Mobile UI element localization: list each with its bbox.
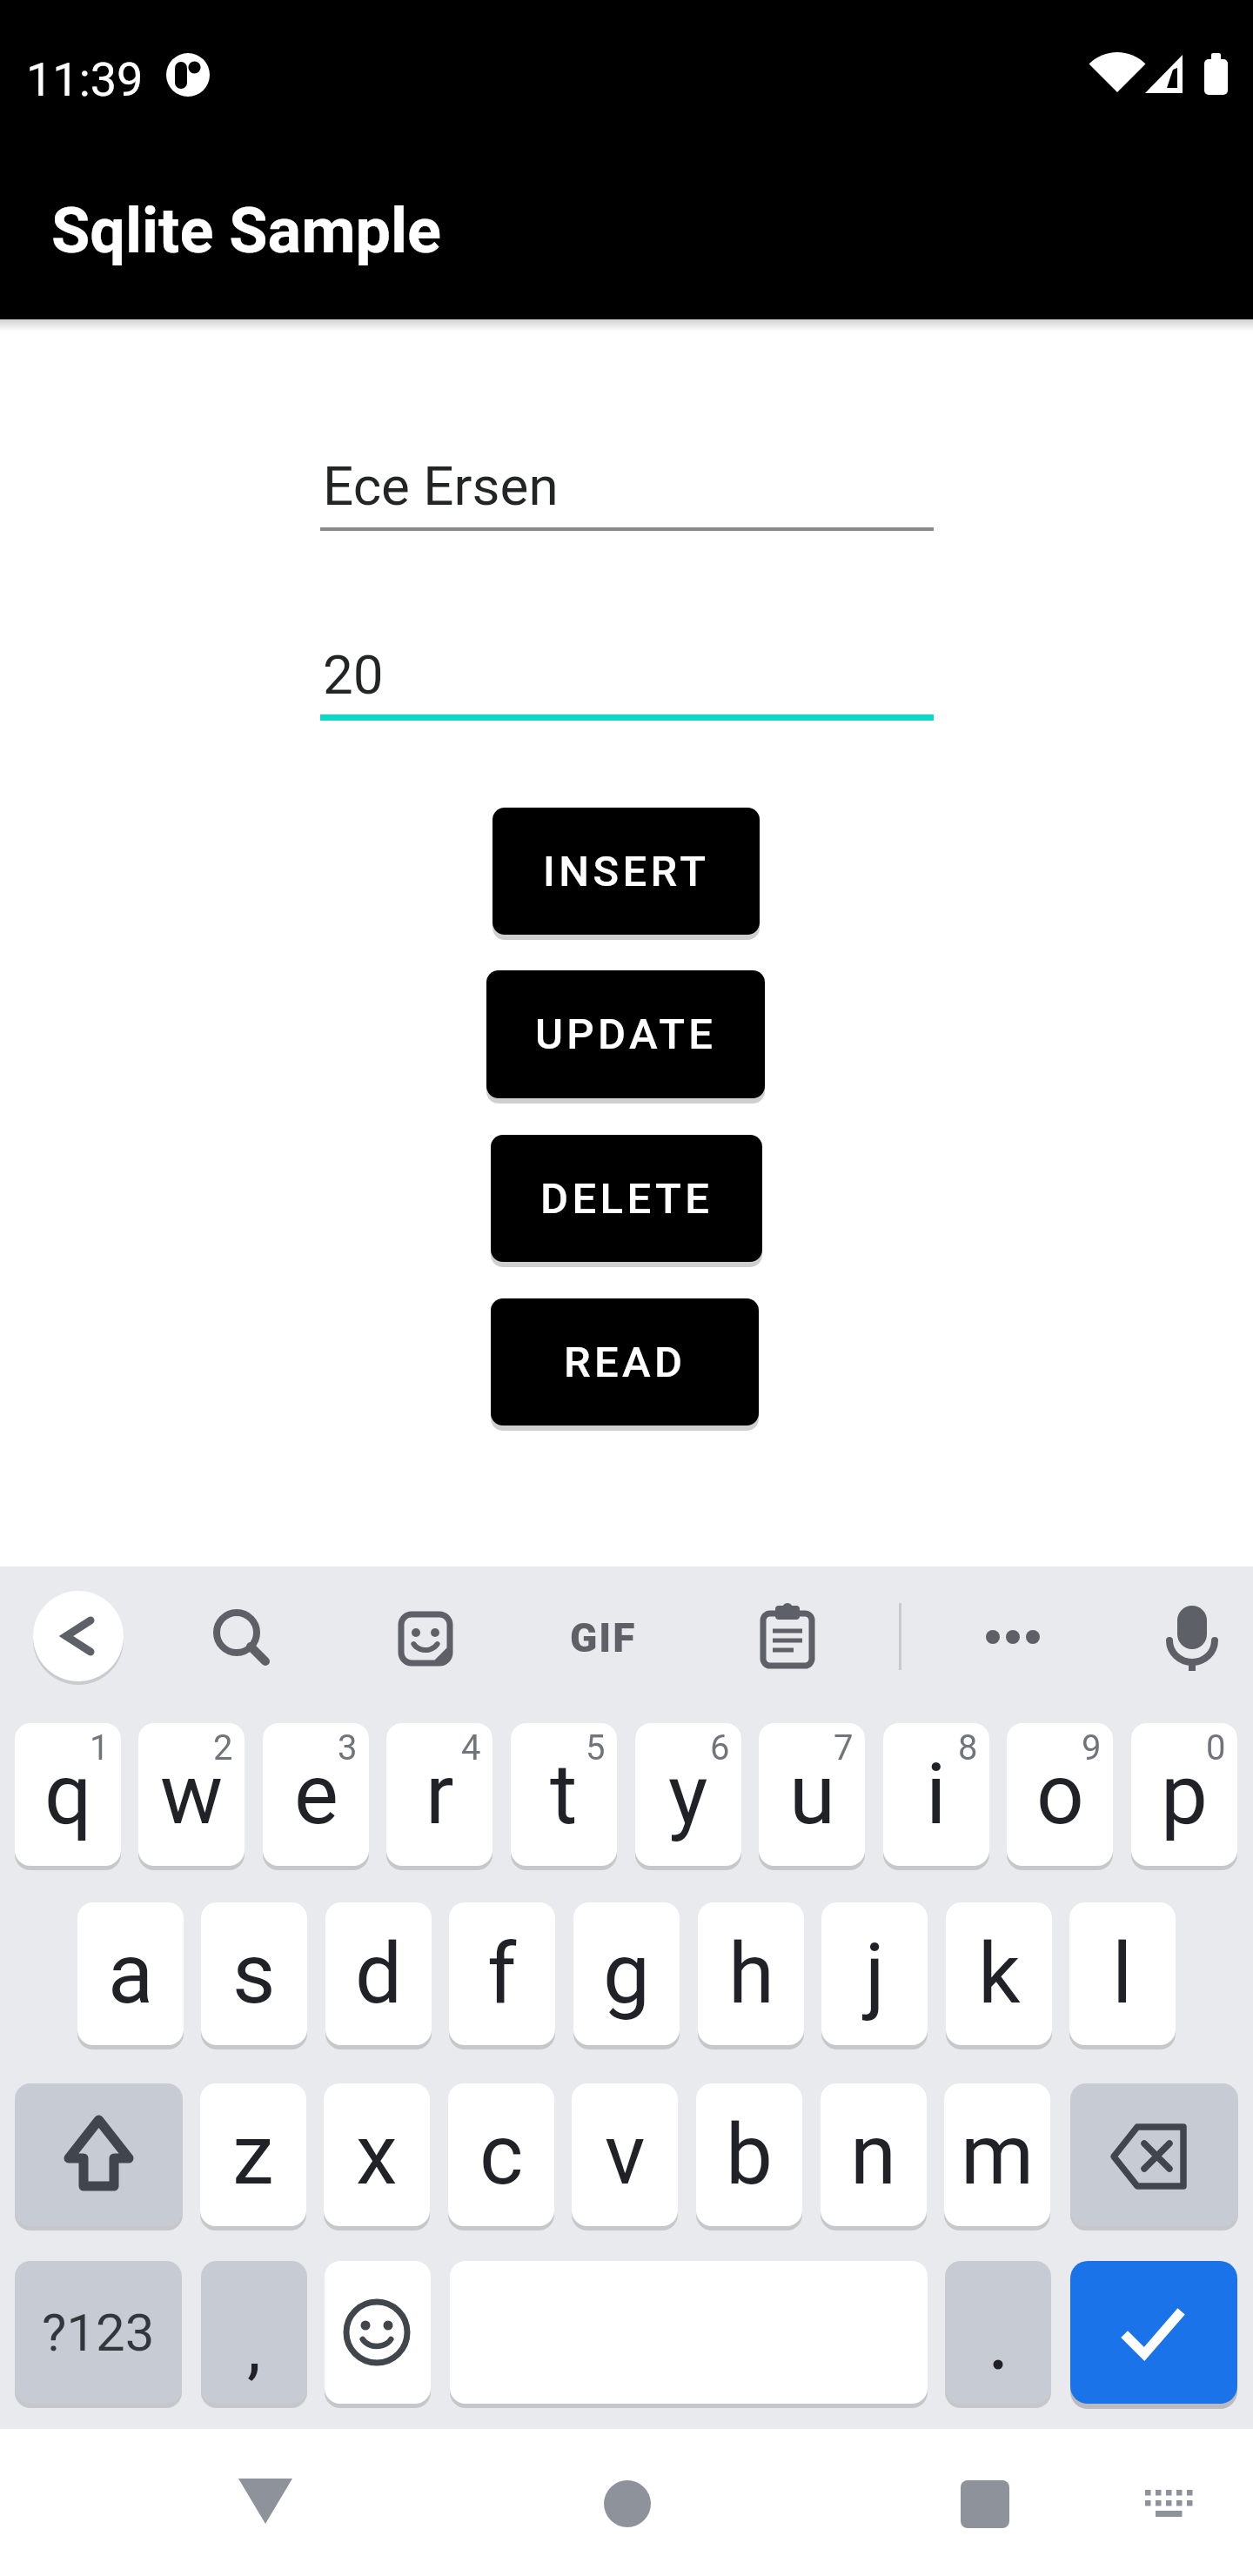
button[interactable]: g: [573, 1902, 680, 2045]
staticText: 11:39: [26, 52, 144, 107]
staticText: 7: [834, 1727, 854, 1768]
button[interactable]: [1145, 2490, 1192, 2516]
button[interactable]: r: [386, 1723, 492, 1866]
staticText: INSERT: [543, 847, 710, 896]
staticText: k: [978, 1925, 1021, 2023]
staticText: j: [865, 1925, 885, 2023]
button[interactable]: ,: [201, 2261, 307, 2404]
staticText: s: [232, 1925, 276, 2023]
button[interactable]: z: [200, 2083, 306, 2226]
button[interactable]: h: [698, 1902, 804, 2045]
staticText: 6: [710, 1727, 730, 1768]
button[interactable]: k: [946, 1902, 1052, 2045]
staticText: a: [108, 1925, 154, 2023]
staticText: l: [1112, 1925, 1133, 2023]
button[interactable]: j: [821, 1902, 928, 2045]
staticText: b: [726, 2106, 773, 2204]
button[interactable]: l: [1069, 1902, 1176, 2045]
staticText: UPDATE: [535, 1010, 717, 1059]
button[interactable]: 20: [320, 621, 934, 721]
button[interactable]: d: [325, 1902, 432, 2045]
staticText: i: [926, 1746, 947, 1844]
staticText: u: [789, 1746, 835, 1844]
button[interactable]: f: [449, 1902, 555, 2045]
staticText: 8: [958, 1727, 978, 1768]
button[interactable]: [973, 1617, 1053, 1657]
button[interactable]: e: [263, 1723, 369, 1866]
button[interactable]: UPDATE: [486, 970, 765, 1098]
button[interactable]: DELETE: [491, 1135, 762, 1262]
staticText: 20: [323, 643, 384, 707]
button[interactable]: v: [572, 2083, 678, 2226]
button[interactable]: t: [511, 1723, 617, 1866]
staticText: 5: [586, 1727, 606, 1768]
staticText: READ: [564, 1338, 687, 1387]
staticText: r: [425, 1746, 454, 1844]
staticText: n: [850, 2106, 897, 2204]
staticText: h: [728, 1925, 774, 2023]
staticText: x: [356, 2106, 398, 2204]
button[interactable]: i: [883, 1723, 989, 1866]
button[interactable]: b: [696, 2083, 802, 2226]
button[interactable]: [1164, 1601, 1220, 1674]
button[interactable]: Ece Ersen: [320, 431, 934, 531]
staticText: e: [294, 1746, 338, 1844]
button[interactable]: x: [324, 2083, 430, 2226]
button[interactable]: [238, 2479, 292, 2524]
button[interactable]: INSERT: [492, 808, 760, 935]
button[interactable]: [761, 1603, 816, 1668]
button[interactable]: [1070, 2083, 1238, 2226]
staticText: GIF: [570, 1614, 637, 1661]
button[interactable]: [399, 1612, 452, 1666]
staticText: p: [1161, 1746, 1208, 1844]
staticText: q: [44, 1746, 92, 1844]
staticText: v: [605, 2106, 646, 2204]
staticText: 4: [461, 1727, 481, 1768]
staticText: DELETE: [540, 1174, 714, 1224]
button[interactable]: [325, 2261, 431, 2404]
button[interactable]: o: [1007, 1723, 1113, 1866]
staticText: m: [961, 2106, 1035, 2204]
staticText: 1: [90, 1727, 110, 1768]
staticText: c: [479, 2106, 524, 2204]
button[interactable]: [209, 1605, 274, 1670]
button[interactable]: p: [1131, 1723, 1237, 1866]
staticText: t: [550, 1746, 578, 1844]
button[interactable]: READ: [491, 1298, 759, 1426]
button[interactable]: ?123: [15, 2261, 182, 2404]
button[interactable]: [15, 2083, 183, 2226]
staticText: 2: [213, 1727, 233, 1768]
staticText: g: [603, 1925, 650, 2023]
button[interactable]: a: [77, 1902, 184, 2045]
staticText: w: [160, 1746, 224, 1844]
staticText: 0: [1206, 1727, 1226, 1768]
button[interactable]: s: [201, 1902, 307, 2045]
staticText: f: [487, 1925, 517, 2023]
button[interactable]: [961, 2480, 1009, 2528]
staticText: y: [668, 1746, 708, 1844]
button[interactable]: c: [448, 2083, 554, 2226]
staticText: Sqlite Sample: [51, 194, 442, 267]
staticText: d: [355, 1925, 403, 2023]
staticText: ,: [247, 2307, 261, 2389]
staticText: 3: [338, 1727, 358, 1768]
button[interactable]: n: [821, 2083, 927, 2226]
button[interactable]: w: [138, 1723, 245, 1866]
button[interactable]: y: [635, 1723, 741, 1866]
staticText: ?123: [42, 2302, 155, 2363]
button[interactable]: q: [15, 1723, 121, 1866]
staticText: z: [232, 2106, 274, 2204]
button[interactable]: u: [759, 1723, 865, 1866]
staticText: 9: [1082, 1727, 1102, 1768]
button[interactable]: [1070, 2261, 1237, 2404]
staticText: Ece Ersen: [323, 454, 559, 518]
staticText: o: [1036, 1746, 1084, 1844]
button[interactable]: m: [944, 2083, 1050, 2226]
button[interactable]: [604, 2480, 651, 2527]
button[interactable]: [945, 2261, 1051, 2404]
button[interactable]: [33, 1591, 124, 1681]
